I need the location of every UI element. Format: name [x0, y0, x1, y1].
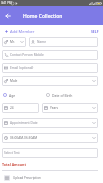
staticText: Home Collection: [23, 13, 63, 20]
button[interactable]: Date of Birth: [46, 90, 98, 100]
button[interactable]: Upload Prescription: [2, 174, 98, 181]
staticText: Male: [10, 79, 18, 83]
button[interactable]: 24: [2, 103, 39, 113]
staticText: Upload Prescription: [13, 176, 41, 180]
staticText: Email (optional): [10, 66, 34, 70]
staticText: Select Test: [4, 151, 20, 155]
button[interactable]: Email (optional): [2, 63, 98, 73]
button[interactable]: Name: [29, 37, 98, 47]
staticText: Name: [37, 40, 46, 44]
button[interactable]: Years: [42, 103, 98, 113]
button[interactable]: Contact Person Mobile: [2, 50, 98, 60]
button[interactable]: Add Member: [5, 25, 35, 37]
button[interactable]: Select Test: [2, 148, 98, 158]
staticText: Add Member: [10, 29, 35, 34]
button[interactable]: Mr.: [2, 37, 26, 47]
staticText: Total Amount: [2, 162, 26, 167]
staticText: Date of Birth: [52, 93, 73, 98]
button[interactable]: Back: [0, 6, 16, 26]
button[interactable]: SELF: [91, 25, 99, 37]
staticText: Years: [50, 106, 59, 110]
staticText: Mr.: [10, 40, 15, 44]
staticText: Appointment Date: [10, 121, 38, 125]
button[interactable]: 06:00AM-06:30AM: [2, 133, 98, 143]
staticText: 3:41 PM: [1, 1, 12, 5]
button[interactable]: Appointment Date: [2, 118, 98, 128]
staticText: SELF: [91, 29, 99, 34]
button[interactable]: Male: [2, 76, 98, 86]
button[interactable]: Age: [2, 90, 46, 100]
staticText: 06:00AM-06:30AM: [10, 136, 38, 140]
staticText: 24: [10, 106, 14, 110]
staticText: Age: [9, 93, 16, 98]
staticText: Contact Person Mobile: [10, 53, 44, 57]
